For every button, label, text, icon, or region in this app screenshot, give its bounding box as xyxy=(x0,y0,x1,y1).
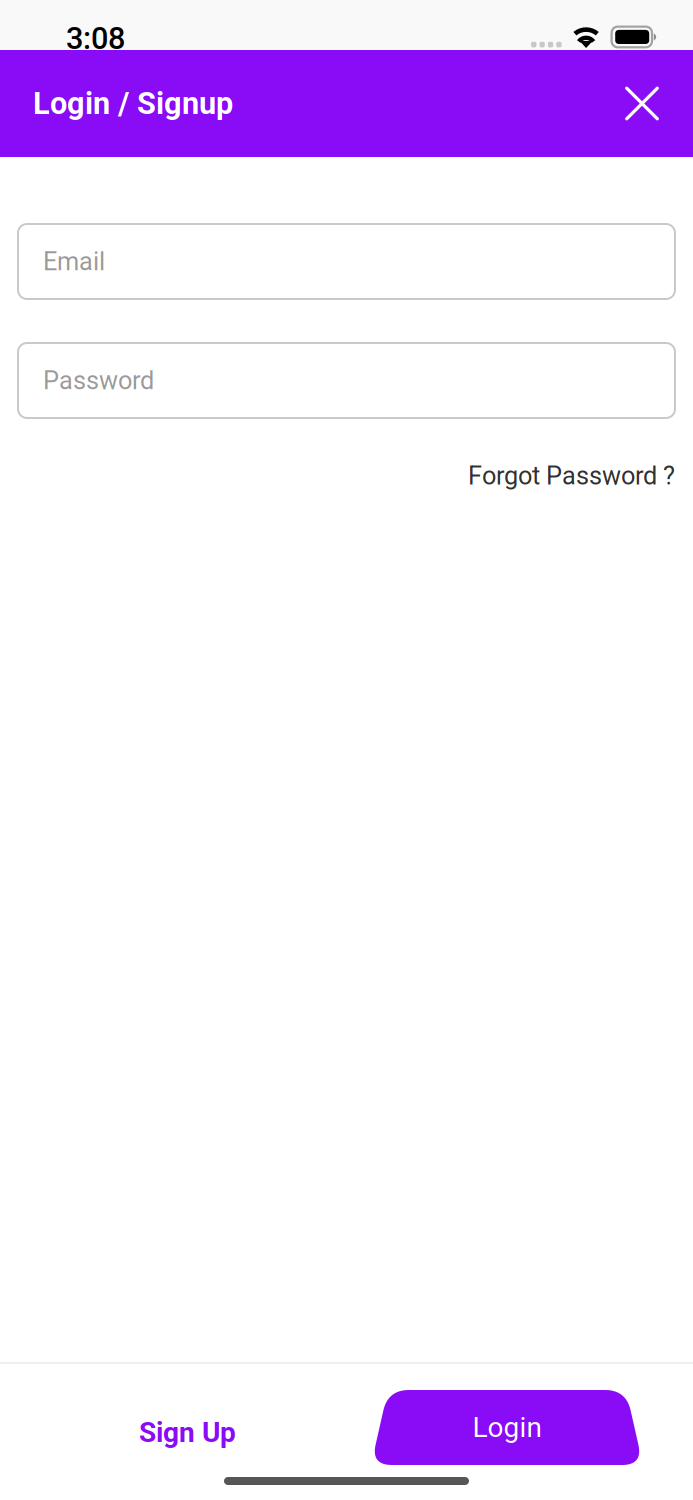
staticText: 3:08 xyxy=(66,20,125,56)
staticText: Forgot Password ? xyxy=(468,461,675,491)
button[interactable]: Email xyxy=(18,224,675,299)
button[interactable]: Close xyxy=(613,74,671,132)
staticText: Email xyxy=(43,247,105,276)
button[interactable]: Password xyxy=(18,343,675,418)
staticText: Login / Signup xyxy=(33,85,233,121)
staticText: Password xyxy=(43,366,154,395)
button[interactable]: Forgot Password ? xyxy=(468,453,675,499)
staticText: Sign Up xyxy=(139,1416,236,1449)
button[interactable]: Sign Up xyxy=(117,1400,258,1465)
button[interactable]: Login xyxy=(371,1390,643,1465)
staticText: Login xyxy=(472,1411,541,1444)
